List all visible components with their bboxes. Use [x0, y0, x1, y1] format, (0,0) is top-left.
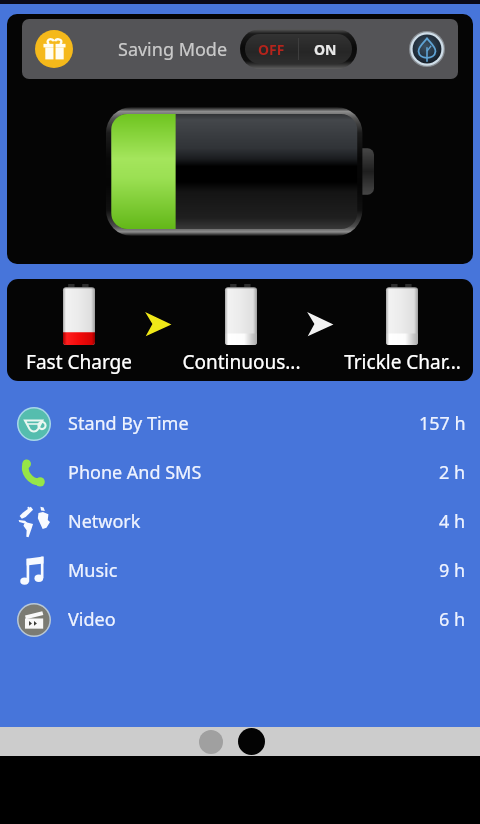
staticText: Music: [68, 558, 118, 583]
staticText: 2 h: [439, 460, 466, 485]
button[interactable]: Phone And SMS: [0, 448, 480, 497]
staticText: Network: [68, 509, 141, 534]
button[interactable]: Network: [0, 497, 480, 546]
staticText: Fast Charge: [26, 349, 132, 375]
button[interactable]: Video: [0, 595, 480, 644]
staticText: Phone And SMS: [68, 460, 202, 485]
button[interactable]: Continuous...: [166, 279, 316, 375]
staticText: Video: [68, 607, 116, 632]
staticText: OFF: [258, 40, 285, 59]
staticText: 157 h: [419, 411, 466, 436]
button[interactable]: Eco mode: [409, 31, 445, 67]
staticText: Trickle Char...: [344, 349, 461, 375]
staticText: 6 h: [439, 607, 466, 632]
button[interactable]: Trickle Char...: [327, 279, 473, 375]
button[interactable]: Fast Charge: [7, 279, 154, 375]
staticText: Saving Mode: [118, 37, 228, 62]
button[interactable]: Stand By Time: [0, 399, 480, 448]
staticText: 4 h: [439, 509, 466, 534]
button[interactable]: Page 2: [238, 728, 265, 755]
button[interactable]: Gift: [35, 30, 73, 68]
staticText: ON: [314, 40, 337, 59]
button[interactable]: Music: [0, 546, 480, 595]
staticText: 9 h: [439, 558, 466, 583]
button[interactable]: Page 1: [199, 730, 223, 754]
staticText: Stand By Time: [68, 411, 189, 436]
button[interactable]: OFF: [245, 34, 352, 64]
staticText: Continuous...: [182, 349, 301, 375]
